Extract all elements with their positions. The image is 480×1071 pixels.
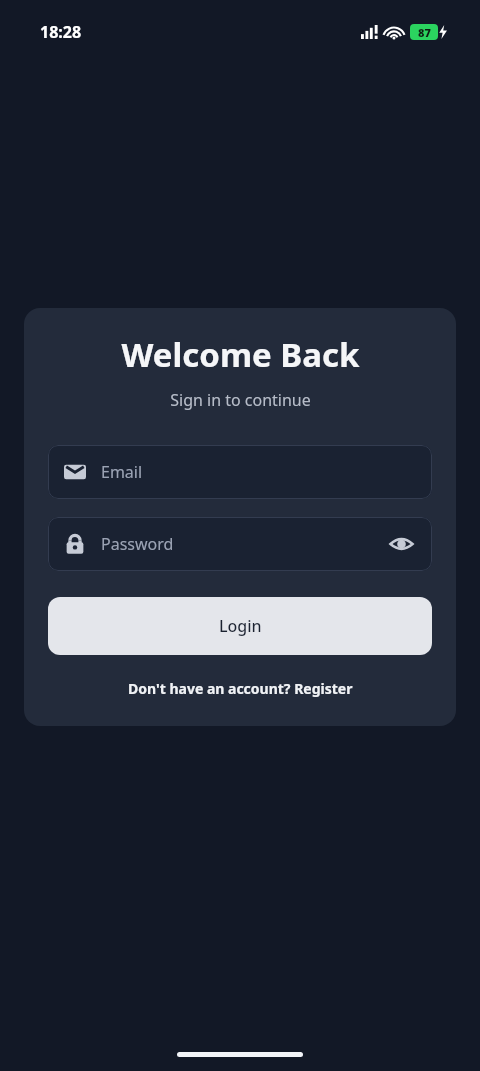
staticText: Don't have an account? Register (128, 679, 353, 698)
staticText: Login (219, 615, 262, 637)
button[interactable]: Login (48, 597, 432, 655)
staticText: 18:28 (40, 21, 82, 43)
button[interactable]: Password (48, 517, 432, 571)
staticText: 87 (418, 25, 431, 40)
staticText: Welcome Back (121, 332, 360, 377)
staticText: Email (101, 461, 416, 483)
staticText: Sign in to continue (170, 389, 311, 411)
button[interactable]: Email (48, 445, 432, 499)
button[interactable]: Don't have an account? Register (122, 675, 359, 702)
button[interactable]: Show password (386, 529, 416, 559)
staticText: Password (101, 533, 386, 555)
